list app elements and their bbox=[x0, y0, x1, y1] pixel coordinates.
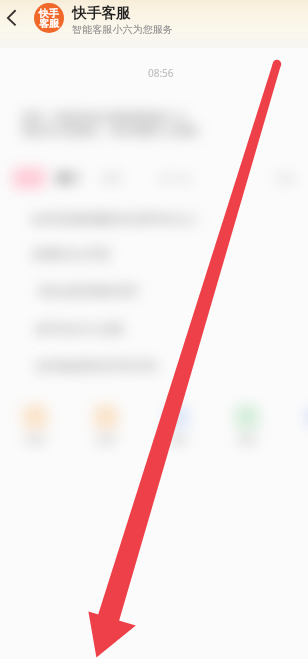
staticText: 热门 bbox=[57, 171, 79, 185]
staticText: 很高兴为您服务，请问需要什么帮助 bbox=[22, 124, 198, 138]
button[interactable]: Back bbox=[0, 0, 26, 36]
staticText: 直播间怎么开通 bbox=[32, 247, 109, 261]
staticText: 快手 客服 bbox=[39, 7, 59, 30]
button[interactable]: Kuaishou customer service avatar bbox=[34, 3, 64, 33]
staticText: 您好！我是您的专属智能客服小六 bbox=[22, 110, 187, 124]
staticText: 保证金退还规则说明 bbox=[38, 284, 137, 298]
staticText: 08:56 bbox=[148, 66, 174, 80]
staticText: 如何修改绑定的手机号码 bbox=[36, 359, 157, 373]
staticText: 如何找回被误删的作品和申诉入口 bbox=[32, 212, 197, 226]
staticText: 智能客服小六为您服务 bbox=[72, 23, 173, 36]
staticText: 快手客服 bbox=[72, 4, 131, 22]
